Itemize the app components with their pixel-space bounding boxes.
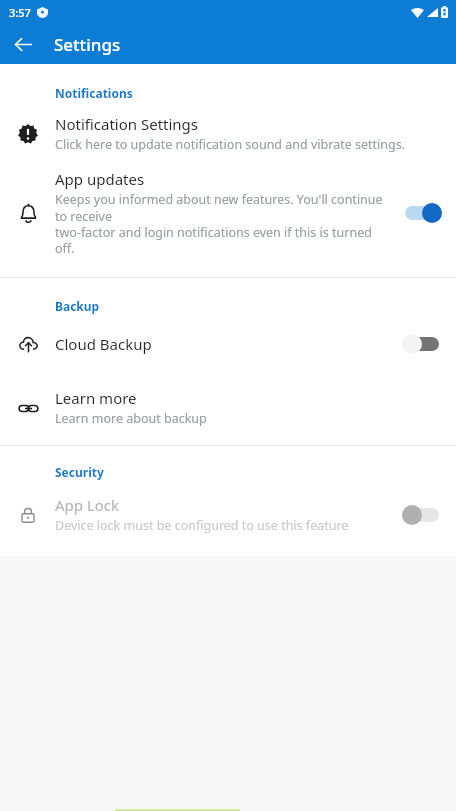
staticText: Notifications — [55, 85, 133, 101]
button[interactable]: Back — [6, 27, 40, 61]
staticText: Settings — [54, 33, 121, 56]
button[interactable]: Toggle — [400, 502, 444, 528]
staticText: Learn more — [55, 388, 137, 408]
button[interactable]: Cloud Backup — [0, 330, 456, 358]
staticText: Keeps you informed about new features. Y… — [55, 191, 392, 256]
staticText: Security — [55, 464, 104, 480]
staticText: App updates — [55, 169, 145, 189]
staticText: App Lock — [55, 495, 120, 515]
button[interactable]: Learn more — [0, 388, 456, 427]
staticText: Backup — [55, 298, 100, 314]
staticText: Learn more about backup — [55, 410, 207, 427]
button[interactable]: App updates — [0, 169, 456, 256]
staticText: Notification Settings — [55, 114, 199, 134]
staticText: 3:57 — [9, 5, 31, 20]
button[interactable]: Toggle — [400, 200, 444, 226]
button[interactable]: App Lock — [0, 495, 456, 534]
button[interactable]: Notification Settings — [0, 114, 456, 153]
staticText: Cloud Backup — [55, 334, 152, 354]
staticText: Device lock must be configured to use th… — [55, 517, 349, 534]
button[interactable]: Toggle — [400, 331, 444, 357]
staticText: Click here to update notification sound … — [55, 136, 406, 153]
